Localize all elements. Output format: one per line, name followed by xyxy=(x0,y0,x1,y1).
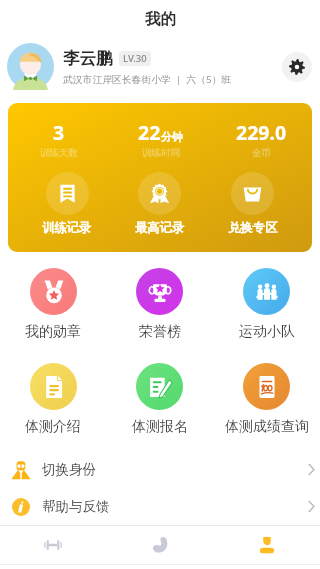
staticText: 体测报名 xyxy=(132,418,188,436)
staticText: 训练记录 xyxy=(42,220,92,235)
staticText: LV.30 xyxy=(123,52,147,65)
staticText: 最高记录 xyxy=(135,220,185,235)
staticText: 金币 xyxy=(252,147,271,159)
button[interactable]: Settings xyxy=(282,52,312,82)
staticText: 训练时间 xyxy=(142,147,180,159)
staticText: 分钟 xyxy=(161,130,183,144)
staticText: 我的 xyxy=(145,9,176,29)
staticText: 22 xyxy=(138,119,161,146)
button[interactable]: 荣誉榜 xyxy=(106,268,213,341)
button[interactable]: 兑换专区 xyxy=(206,172,299,235)
button[interactable]: 切换身份 xyxy=(0,451,320,488)
staticText: 帮助与反馈 xyxy=(42,498,110,515)
staticText: 武汉市江岸区长春街小学 | 六（5）班 xyxy=(63,73,232,86)
button[interactable]: 体测报名 xyxy=(106,363,213,436)
staticText: 体测介绍 xyxy=(25,418,81,436)
button[interactable]: 我的勋章 xyxy=(0,268,106,341)
staticText: 切换身份 xyxy=(42,461,96,478)
staticText: 体测成绩查询 xyxy=(225,418,309,436)
button[interactable]: 体测介绍 xyxy=(0,363,106,436)
button[interactable]: Training xyxy=(106,526,213,564)
staticText: 兑换专区 xyxy=(228,220,278,235)
button[interactable]: 最高记录 xyxy=(113,172,206,235)
button[interactable]: Mine xyxy=(213,526,320,564)
button[interactable]: Workout xyxy=(0,526,106,564)
button[interactable]: 训练记录 xyxy=(21,172,113,235)
staticText: 李云鹏 xyxy=(63,48,113,69)
staticText: 训练天数 xyxy=(40,147,78,159)
button[interactable]: 帮助与反馈 xyxy=(0,488,320,525)
button[interactable]: 运动小队 xyxy=(213,268,320,341)
staticText: 运动小队 xyxy=(239,323,295,341)
staticText: 229.0 xyxy=(236,119,287,146)
button[interactable]: 体测成绩查询 xyxy=(213,363,320,436)
staticText: 3 xyxy=(53,119,65,146)
staticText: 我的勋章 xyxy=(25,323,81,341)
staticText: 荣誉榜 xyxy=(139,323,181,341)
